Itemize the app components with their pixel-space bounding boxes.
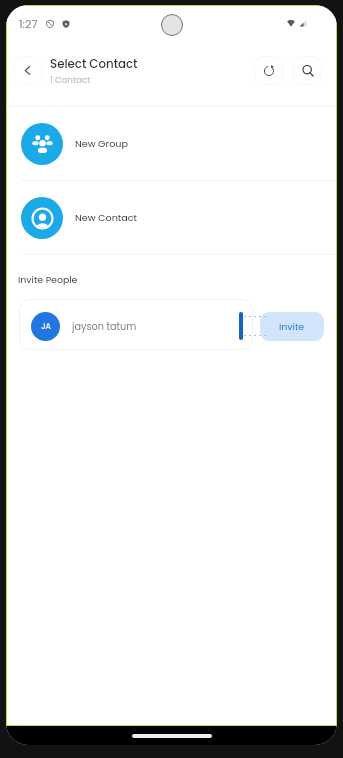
staticText: jayson tatum: [72, 320, 137, 334]
button[interactable]: Invite: [260, 312, 324, 341]
staticText: 1:27: [19, 16, 38, 32]
staticText: 1 Contact: [50, 74, 91, 86]
button[interactable]: JA: [19, 299, 253, 350]
button[interactable]: Refresh: [254, 56, 283, 85]
staticText: New Group: [75, 137, 128, 150]
button[interactable]: New Contact: [7, 181, 336, 254]
staticText: JA: [41, 321, 51, 332]
button[interactable]: Search: [293, 56, 322, 85]
staticText: Invite: [279, 320, 305, 333]
staticText: New Contact: [75, 211, 138, 224]
button[interactable]: New Group: [7, 107, 336, 180]
button[interactable]: Back: [13, 56, 42, 85]
staticText: Invite People: [18, 273, 78, 286]
staticText: Select Contact: [50, 56, 138, 73]
